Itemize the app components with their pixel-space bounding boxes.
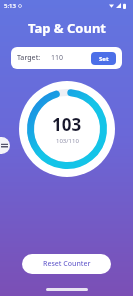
staticText: 5:13 xyxy=(4,2,16,10)
staticText: Reset Counter xyxy=(43,259,91,269)
staticText: Target: xyxy=(17,53,41,63)
button[interactable]: Reset Counter xyxy=(22,254,111,274)
button[interactable]: Set xyxy=(91,52,116,65)
button[interactable]: Tap to count xyxy=(19,81,115,177)
staticText: 103/110 xyxy=(56,137,79,145)
staticText: 110 xyxy=(51,53,64,63)
staticText: 103 xyxy=(52,113,82,136)
button[interactable]: Decrease counter xyxy=(0,137,10,154)
staticText: Set xyxy=(99,55,109,63)
staticText: Tap & Count xyxy=(28,19,106,37)
